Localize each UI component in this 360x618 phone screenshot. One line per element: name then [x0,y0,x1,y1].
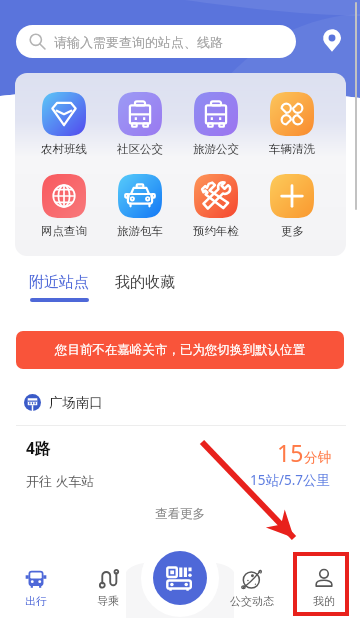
staticText: 导乘 [97,594,119,608]
button[interactable]: 预约年检 [184,174,248,238]
button[interactable]: 查看更多 [155,506,205,522]
staticText: 网点查询 [41,224,87,238]
staticText: 旅游包车 [117,224,163,238]
button[interactable]: 您目前不在嘉峪关市，已为您切换到默认位置 [16,331,344,369]
staticText: 社区公交 [117,142,163,156]
button[interactable]: 旅游公交 [184,92,248,156]
button[interactable]: 附近站点 [29,273,89,302]
button[interactable]: 更多 [260,174,324,238]
button[interactable]: 农村班线 [32,92,96,156]
staticText: 出行 [25,594,47,608]
staticText: 广场南口 [49,394,103,411]
button[interactable]: Scan bus code [153,551,207,605]
button[interactable]: 我的 [288,562,360,614]
button[interactable]: 旅游包车 [108,174,172,238]
staticText: 分钟 [304,449,331,466]
staticText: 更多 [281,224,304,238]
staticText: 我的 [313,594,335,608]
staticText: 您目前不在嘉峪关市，已为您切换到默认位置 [55,342,305,358]
staticText: 农村班线 [41,142,87,156]
button[interactable]: 出行 [0,562,72,614]
button[interactable]: 公交动态 [216,562,288,614]
staticText: 15 [277,437,304,468]
button[interactable]: 车辆清洗 [260,92,324,156]
staticText: 15站/5.7公里 [250,471,331,489]
staticText: 请输入需要查询的站点、线路 [54,34,223,50]
staticText: 附近站点 [29,273,89,292]
button[interactable]: 我的收藏 [115,273,175,292]
button[interactable]: 请输入需要查询的站点、线路 [16,25,296,58]
staticText: 开往 火车站 [26,472,95,490]
button[interactable]: 导乘 [72,562,144,614]
button[interactable]: Location [317,26,347,56]
staticText: 4路 [26,437,51,458]
staticText: 车辆清洗 [269,142,315,156]
button[interactable]: 网点查询 [32,174,96,238]
staticText: 旅游公交 [193,142,239,156]
staticText: 我的收藏 [115,273,175,292]
staticText: 预约年检 [193,224,239,238]
button[interactable]: 社区公交 [108,92,172,156]
staticText: 公交动态 [230,594,274,608]
